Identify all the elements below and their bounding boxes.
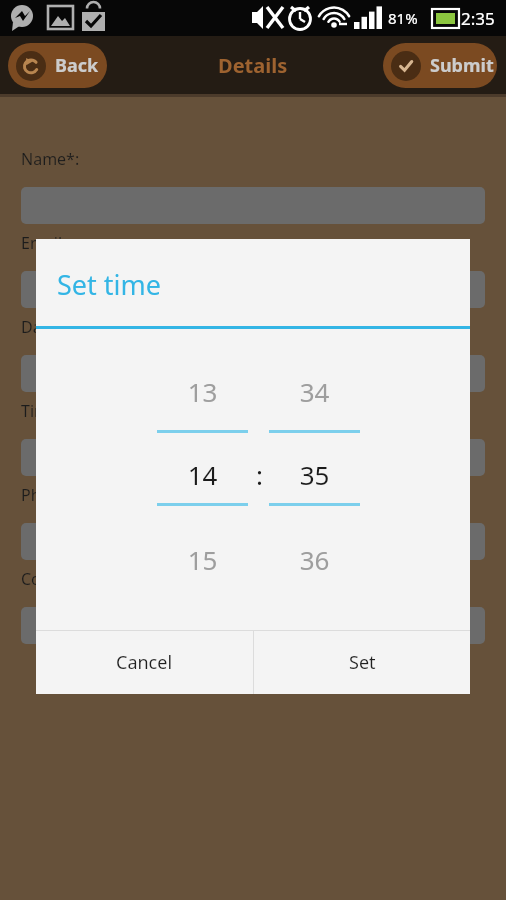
button[interactable] — [21, 607, 485, 644]
staticText: : — [256, 457, 263, 492]
staticText: Time: — [21, 400, 63, 422]
staticText: Submit — [430, 53, 494, 78]
staticText: Details — [218, 52, 288, 79]
staticText: Comments: — [21, 568, 108, 590]
staticText: Set — [349, 650, 376, 675]
button[interactable] — [21, 523, 485, 560]
button[interactable]: Submit — [383, 43, 497, 88]
staticText: Cancel — [116, 650, 173, 675]
button[interactable]: Set — [254, 631, 470, 694]
staticText: 34 — [269, 374, 360, 409]
button[interactable] — [21, 439, 485, 476]
staticText: Email: — [21, 232, 67, 254]
button[interactable] — [21, 271, 485, 308]
staticText: 15 — [157, 542, 248, 577]
button[interactable]: Cancel — [36, 631, 253, 694]
button[interactable]: 35 — [269, 457, 360, 492]
staticText: Back — [55, 53, 99, 78]
staticText: 81% — [388, 8, 418, 28]
staticText: 2:35 — [461, 7, 495, 30]
staticText: 36 — [269, 542, 360, 577]
staticText: Set time — [57, 266, 162, 303]
staticText: Date: — [21, 316, 61, 338]
button[interactable]: Back — [8, 43, 107, 88]
button[interactable] — [21, 355, 485, 392]
staticText: Phone: — [21, 484, 74, 506]
staticText: 13 — [157, 374, 248, 409]
staticText: Name*: — [21, 148, 80, 170]
button[interactable]: 14 — [157, 457, 248, 492]
